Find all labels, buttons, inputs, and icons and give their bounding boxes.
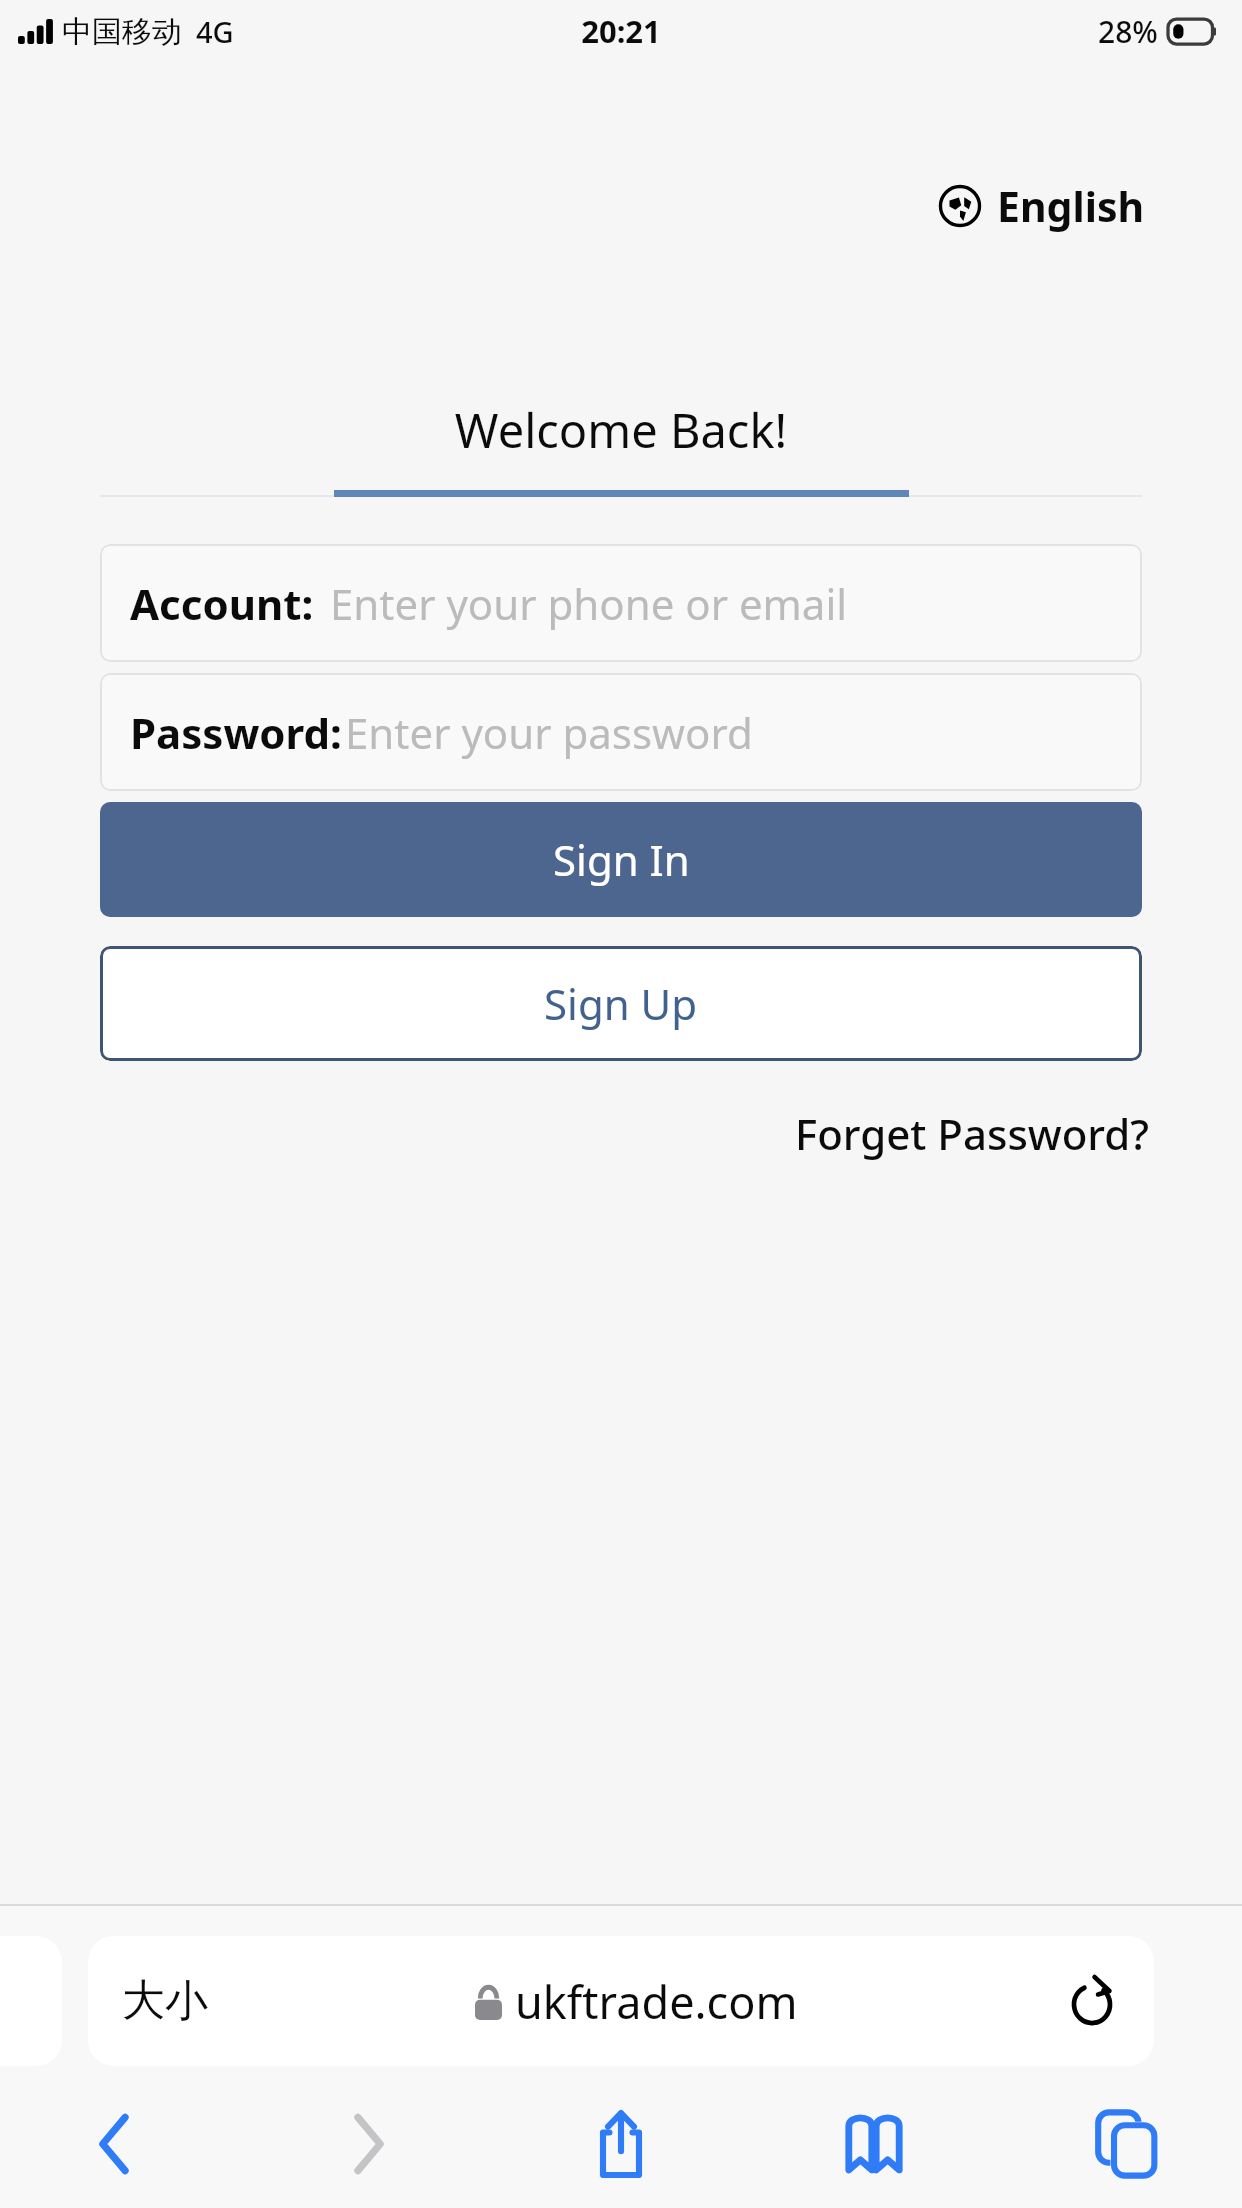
staticText: 大小 (122, 1974, 208, 2028)
button[interactable]: Account: (100, 544, 1142, 662)
staticText: English (997, 178, 1145, 234)
button[interactable]: English (935, 174, 1149, 238)
staticText: Forget Password? (795, 1105, 1150, 1162)
staticText: Welcome Back! (0, 398, 1242, 462)
staticText: Enter your phone or email (330, 575, 848, 632)
button[interactable]: Share (546, 2088, 696, 2200)
button[interactable]: Forward (293, 2088, 443, 2200)
staticText: Enter your password (345, 704, 753, 761)
button[interactable]: Reload page (1064, 1973, 1120, 2029)
staticText: 28% (1098, 11, 1158, 52)
staticText: ukftrade.com (515, 1971, 798, 2032)
staticText: 中国移动 (62, 13, 182, 51)
staticText: 20:21 (581, 10, 661, 52)
button[interactable]: Password: (100, 673, 1142, 791)
button[interactable]: Tabs (1052, 2088, 1202, 2200)
button[interactable]: Sign In (100, 802, 1142, 917)
button[interactable]: Bookmarks (799, 2088, 949, 2200)
button[interactable]: Forget Password? (791, 1101, 1154, 1166)
staticText: Account: (130, 575, 314, 632)
staticText: Sign In (553, 831, 690, 888)
staticText: Sign Up (544, 975, 698, 1032)
button[interactable]: 大小 (88, 1936, 1154, 2066)
staticText: 4G (196, 12, 234, 51)
staticText: Password: (130, 704, 342, 761)
button[interactable]: Sign Up (100, 946, 1142, 1061)
button[interactable]: Back (40, 2088, 190, 2200)
